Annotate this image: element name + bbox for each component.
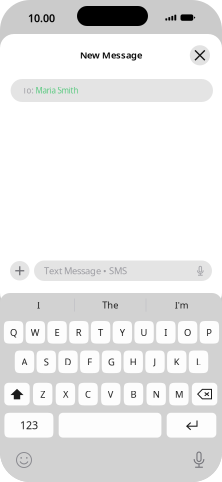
button[interactable]: B	[124, 383, 143, 405]
staticText: B	[130, 388, 136, 400]
staticText: V	[108, 388, 114, 400]
staticText: K	[174, 356, 180, 368]
button[interactable]: K	[167, 350, 186, 373]
staticText: A	[21, 356, 27, 368]
button[interactable]: Dictation	[193, 451, 204, 468]
staticText: P	[206, 326, 212, 338]
button[interactable]: F	[80, 350, 99, 373]
button[interactable]: The	[75, 293, 146, 317]
staticText: Text Message • SMS	[44, 265, 127, 277]
staticText: D	[64, 356, 71, 368]
staticText: Maria Smith	[34, 85, 79, 96]
button[interactable]: G	[102, 350, 121, 373]
staticText: R	[76, 326, 82, 338]
staticText: I'm	[175, 299, 189, 311]
staticText: I	[37, 299, 40, 311]
button[interactable]: I'm	[146, 293, 217, 317]
staticText: C	[85, 388, 91, 400]
button[interactable]: Space	[59, 413, 161, 438]
button[interactable]: Emoji	[14, 450, 34, 470]
button[interactable]: Add attachment	[10, 261, 29, 280]
staticText: U	[141, 326, 148, 338]
button[interactable]: N	[146, 383, 166, 405]
staticText: G	[108, 356, 115, 368]
button[interactable]: V	[101, 383, 120, 405]
button[interactable]: Return	[167, 413, 216, 438]
button[interactable]: C	[78, 383, 98, 405]
staticText: O	[184, 326, 191, 338]
button[interactable]: L	[189, 350, 208, 373]
button[interactable]: H	[123, 350, 143, 373]
button[interactable]: Delete	[192, 383, 217, 405]
staticText: W	[31, 326, 40, 338]
staticText: To:	[23, 85, 34, 96]
staticText: Q	[10, 326, 17, 338]
button[interactable]: Z	[33, 383, 52, 405]
button[interactable]: Close	[190, 45, 210, 65]
button[interactable]: D	[58, 350, 78, 373]
button[interactable]: U	[134, 321, 154, 344]
staticText: E	[55, 326, 60, 338]
staticText: Y	[120, 326, 125, 338]
staticText: T	[98, 326, 103, 338]
staticText: 10.00	[28, 11, 55, 25]
staticText: J	[153, 356, 156, 368]
button[interactable]: T	[91, 321, 110, 344]
button[interactable]: X	[56, 383, 75, 405]
button[interactable]: I	[3, 293, 74, 317]
staticText: N	[153, 388, 160, 400]
button[interactable]: P	[200, 321, 219, 344]
staticText: X	[63, 388, 68, 400]
staticText: H	[130, 356, 137, 368]
button[interactable]: J	[145, 350, 165, 373]
button[interactable]: O	[178, 321, 197, 344]
staticText: 123	[20, 418, 38, 432]
staticText: Z	[40, 388, 45, 400]
button[interactable]: M	[169, 383, 189, 405]
staticText: I	[164, 326, 167, 338]
button[interactable]: I	[156, 321, 176, 344]
staticText: L	[196, 356, 201, 368]
staticText: New Message	[80, 49, 142, 61]
button[interactable]: Y	[113, 321, 132, 344]
button[interactable]: W	[26, 321, 45, 344]
button[interactable]: S	[36, 350, 56, 373]
staticText: S	[44, 356, 49, 368]
button[interactable]: A	[15, 350, 34, 373]
button[interactable]: R	[69, 321, 89, 344]
staticText: The	[102, 299, 118, 311]
button[interactable]: E	[47, 321, 67, 344]
button[interactable]: Shift	[4, 383, 30, 405]
button[interactable]: Q	[4, 321, 23, 344]
button[interactable]: 123	[4, 413, 53, 438]
staticText: F	[87, 356, 92, 368]
staticText: M	[175, 388, 183, 400]
